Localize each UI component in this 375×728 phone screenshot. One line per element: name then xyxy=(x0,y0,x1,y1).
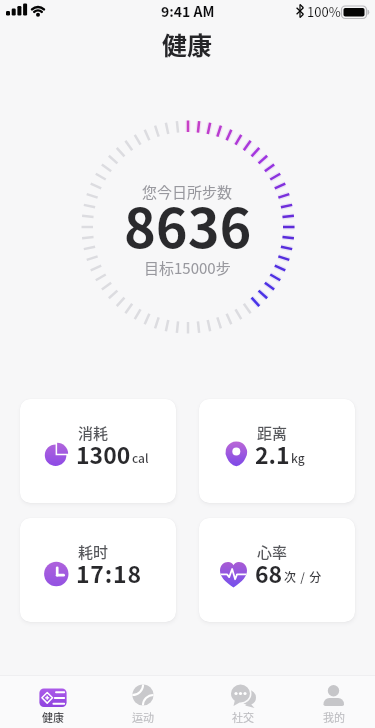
staticText: 我的 xyxy=(323,709,345,725)
staticText: 消耗 xyxy=(78,422,109,444)
staticText: 距离 xyxy=(257,422,288,444)
button[interactable]: 运动 xyxy=(111,676,175,728)
staticText: kg xyxy=(291,449,305,466)
staticText: 2.1 xyxy=(255,437,290,470)
staticText: 68 xyxy=(255,556,283,589)
staticText: 100% xyxy=(307,2,341,21)
button[interactable]: 距离 xyxy=(199,399,355,503)
staticText: 9:41 AM xyxy=(161,1,215,21)
staticText: 运动 xyxy=(132,709,154,725)
staticText: 17:18 xyxy=(76,556,142,589)
staticText: 社交 xyxy=(232,709,254,725)
staticText: cal xyxy=(132,449,149,466)
staticText: 健康 xyxy=(162,26,213,60)
button[interactable]: 社交 xyxy=(211,676,275,728)
staticText: 您今日所步数 xyxy=(142,181,233,203)
button[interactable]: 我的 xyxy=(302,676,366,728)
button[interactable]: 健康 xyxy=(21,676,85,728)
staticText: 健康 xyxy=(42,709,64,725)
button[interactable]: 心率 xyxy=(199,518,355,622)
staticText: 8636 xyxy=(124,185,252,263)
staticText: 耗时 xyxy=(78,541,109,563)
button[interactable]: 耗时 xyxy=(20,518,176,622)
staticText: 次 / 分 xyxy=(284,568,323,585)
staticText: 心率 xyxy=(257,541,288,563)
staticText: 1300 xyxy=(76,437,131,470)
staticText: 目标15000步 xyxy=(144,257,231,279)
button[interactable]: 消耗 xyxy=(20,399,176,503)
